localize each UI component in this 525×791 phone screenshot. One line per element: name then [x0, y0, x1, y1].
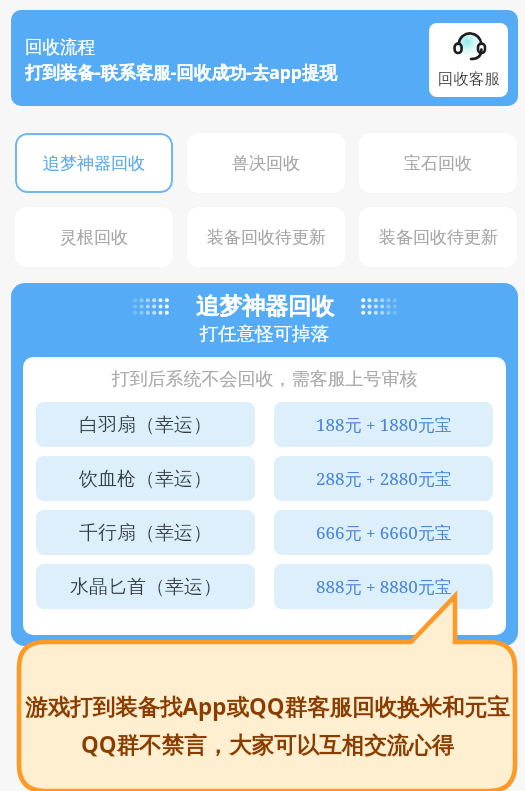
staticText: 装备回收待更新 — [207, 227, 326, 248]
staticText: 游戏打到装备找App或QQ群客服回收换米和元宝 — [25, 691, 510, 722]
button[interactable]: 888元 + 8880元宝 — [274, 564, 493, 609]
staticText: 888元 + 8880元宝 — [316, 575, 452, 598]
button[interactable]: 188元 + 1880元宝 — [274, 402, 493, 447]
staticText: QQ群不禁言，大家可以互相交流心得 — [81, 729, 455, 760]
staticText: 水晶匕首（幸运） — [70, 575, 222, 599]
button[interactable]: 饮血枪（幸运） — [36, 456, 255, 501]
button[interactable]: 白羽扇（幸运） — [36, 402, 255, 447]
staticText: 宝石回收 — [404, 153, 472, 174]
staticText: 追梦神器回收 — [43, 153, 145, 174]
staticText: 饮血枪（幸运） — [79, 467, 212, 491]
button[interactable]: 288元 + 2880元宝 — [274, 456, 493, 501]
staticText: 回收客服 — [438, 69, 500, 89]
button[interactable]: 水晶匕首（幸运） — [36, 564, 255, 609]
staticText: 回收流程 — [25, 36, 95, 58]
button[interactable]: 灵根回收 — [15, 207, 173, 267]
button[interactable]: 兽决回收 — [187, 133, 345, 193]
staticText: 装备回收待更新 — [379, 227, 498, 248]
button[interactable]: 回收客服 — [429, 23, 508, 97]
button[interactable]: 装备回收待更新 — [187, 207, 345, 267]
button[interactable]: 千行扇（幸运） — [36, 510, 255, 555]
staticText: 灵根回收 — [60, 227, 128, 248]
staticText: 打任意怪可掉落 — [11, 322, 518, 345]
staticText: 打到装备-联系客服-回收成功-去app提现 — [25, 60, 337, 84]
staticText: 追梦神器回收 — [196, 292, 334, 321]
staticText: 打到后系统不会回收，需客服上号审核 — [36, 368, 493, 391]
staticText: 188元 + 1880元宝 — [316, 413, 452, 436]
staticText: 千行扇（幸运） — [79, 521, 212, 545]
staticText: 288元 + 2880元宝 — [316, 467, 452, 490]
staticText: 兽决回收 — [232, 153, 300, 174]
button[interactable]: 装备回收待更新 — [359, 207, 517, 267]
staticText: 白羽扇（幸运） — [79, 413, 212, 437]
staticText: 666元 + 6660元宝 — [316, 521, 452, 544]
button[interactable]: 666元 + 6660元宝 — [274, 510, 493, 555]
button[interactable]: 追梦神器回收 — [15, 133, 173, 193]
button[interactable]: 宝石回收 — [359, 133, 517, 193]
